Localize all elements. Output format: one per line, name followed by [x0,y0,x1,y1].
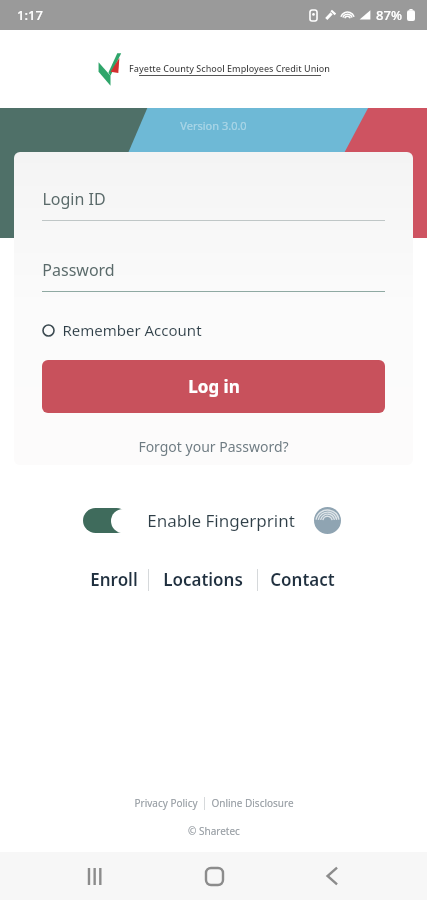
staticText: © Sharetec [188,824,240,838]
staticText: Log in [188,375,240,398]
staticText: Fayette County School Employees Credit U… [129,62,330,74]
staticText: Remember Account [62,320,202,340]
button[interactable]: Locations [149,564,257,595]
button[interactable]: Contact [258,564,347,595]
staticText: 1:17 [17,6,43,24]
button[interactable]: Forgot your Password? [134,433,293,460]
staticText: Version 3.0.0 [180,118,247,133]
button[interactable]: Privacy Policy [128,794,204,812]
staticText: Password [42,259,115,281]
staticText: Enable Fingerprint [147,509,295,532]
button[interactable]: Recent apps [72,853,118,899]
button[interactable]: Enroll [80,564,148,595]
button[interactable]: Enable Fingerprint toggle [83,507,135,534]
staticText: Login ID [42,188,106,210]
button[interactable]: Log in [42,360,385,413]
button[interactable]: Online Disclosure [205,794,300,812]
staticText: 87% [376,6,402,24]
button[interactable]: Remember Account [42,316,202,344]
button[interactable]: Home [191,853,237,899]
button[interactable]: Fingerprint login [309,502,345,538]
button[interactable]: Back [309,853,355,899]
